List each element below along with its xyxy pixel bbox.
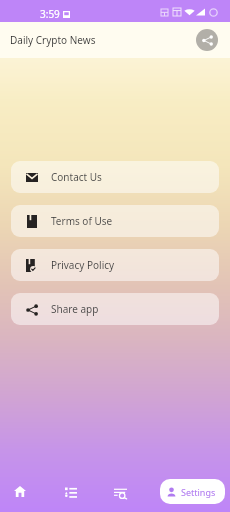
button[interactable]: Share (196, 29, 218, 51)
staticText: Daily Crypto News (10, 33, 96, 47)
button[interactable]: Settings (160, 479, 225, 504)
staticText: Terms of Use (51, 214, 113, 228)
staticText: Contact Us (51, 170, 102, 184)
button[interactable]: Terms of Use (11, 205, 219, 237)
button[interactable]: Share app (11, 293, 219, 325)
staticText: 3:59 (40, 7, 60, 21)
button[interactable]: Home (7, 479, 32, 504)
staticText: Share app (51, 302, 99, 316)
staticText: Settings (181, 486, 216, 498)
staticText: Privacy Policy (51, 258, 115, 272)
button[interactable]: Privacy Policy (11, 249, 219, 281)
button[interactable]: Categories (58, 479, 83, 504)
button[interactable]: Search (108, 480, 133, 505)
button[interactable]: Contact Us (11, 161, 219, 193)
